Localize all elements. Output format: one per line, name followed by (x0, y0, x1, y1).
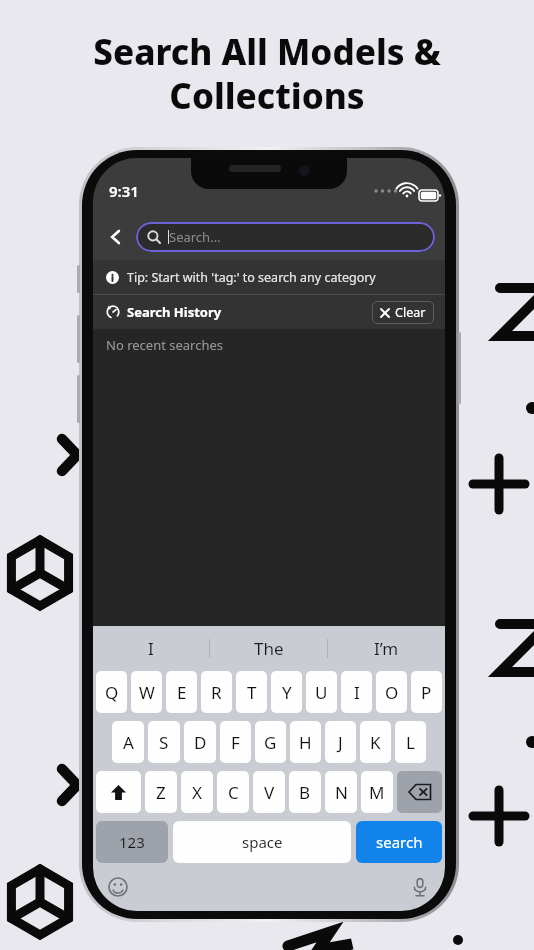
button[interactable]: Tip: Start with 'tag:' to search any cat… (93, 260, 445, 294)
button[interactable]: U (306, 671, 337, 713)
button[interactable]: Shift (96, 771, 141, 813)
button[interactable]: Z (145, 771, 177, 813)
staticText: V (264, 781, 275, 804)
staticText: Z (156, 781, 166, 804)
staticText: search (376, 832, 423, 852)
staticText: K (370, 731, 381, 754)
staticText: H (299, 731, 312, 754)
staticText: U (315, 681, 328, 704)
button[interactable]: J (325, 721, 356, 763)
staticText: A (123, 731, 134, 754)
staticText: No recent searches (106, 336, 224, 354)
button[interactable]: S (148, 721, 180, 763)
staticText: Search History (127, 303, 222, 321)
button[interactable]: Search... (136, 222, 435, 252)
button[interactable]: N (325, 771, 357, 813)
button[interactable]: C (217, 771, 249, 813)
staticText: O (385, 681, 399, 704)
staticText: W (139, 681, 155, 704)
staticText: G (264, 731, 277, 754)
button[interactable]: I’m (328, 626, 445, 671)
staticText: F (231, 731, 240, 754)
button[interactable]: V (253, 771, 285, 813)
button[interactable]: D (184, 721, 216, 763)
staticText: Tip: Start with 'tag:' to search any cat… (127, 269, 376, 286)
button[interactable]: L (395, 721, 426, 763)
staticText: L (406, 731, 415, 754)
button[interactable]: R (201, 671, 232, 713)
staticText: Q (105, 681, 119, 704)
button[interactable]: F (220, 721, 251, 763)
button[interactable]: Back (101, 222, 131, 252)
staticText: 9:31 (109, 181, 139, 201)
button[interactable]: B (289, 771, 321, 813)
staticText: Clear (395, 304, 426, 321)
button[interactable]: O (376, 671, 407, 713)
button[interactable]: 123 (96, 821, 168, 863)
staticText: M (369, 781, 385, 804)
button[interactable]: I (93, 626, 209, 671)
button[interactable]: W (131, 671, 162, 713)
staticText: The (254, 637, 284, 660)
button[interactable]: The (210, 626, 327, 671)
button[interactable]: I (341, 671, 372, 713)
button[interactable]: search (356, 821, 442, 863)
button[interactable]: A (112, 721, 144, 763)
button[interactable]: H (290, 721, 321, 763)
button[interactable]: E (166, 671, 197, 713)
staticText: Y (282, 681, 292, 704)
staticText: Search... (169, 228, 221, 246)
staticText: J (338, 731, 343, 754)
staticText: I (354, 681, 360, 704)
staticText: S (159, 731, 169, 754)
staticText: Search All Models & Collections (18, 28, 516, 119)
staticText: space (242, 832, 283, 852)
staticText: I (148, 637, 154, 660)
button[interactable]: M (361, 771, 393, 813)
staticText: 123 (119, 832, 145, 852)
button[interactable]: Clear (372, 301, 434, 324)
staticText: T (247, 681, 257, 704)
staticText: B (299, 781, 311, 804)
staticText: N (335, 781, 348, 804)
button[interactable]: space (173, 821, 351, 863)
button[interactable]: Q (96, 671, 127, 713)
button[interactable]: G (255, 721, 286, 763)
button[interactable]: Emoji (105, 874, 131, 900)
staticText: D (194, 731, 207, 754)
button[interactable]: Dictation (407, 874, 433, 900)
staticText: R (211, 681, 222, 704)
button[interactable]: K (360, 721, 391, 763)
button[interactable]: P (411, 671, 442, 713)
staticText: I’m (374, 637, 399, 660)
button[interactable]: Backspace (397, 771, 442, 813)
button[interactable]: Y (271, 671, 302, 713)
button[interactable]: X (181, 771, 213, 813)
staticText: E (177, 681, 187, 704)
staticText: P (421, 681, 432, 704)
button[interactable]: T (236, 671, 267, 713)
staticText: C (228, 781, 239, 804)
staticText: X (192, 781, 202, 804)
